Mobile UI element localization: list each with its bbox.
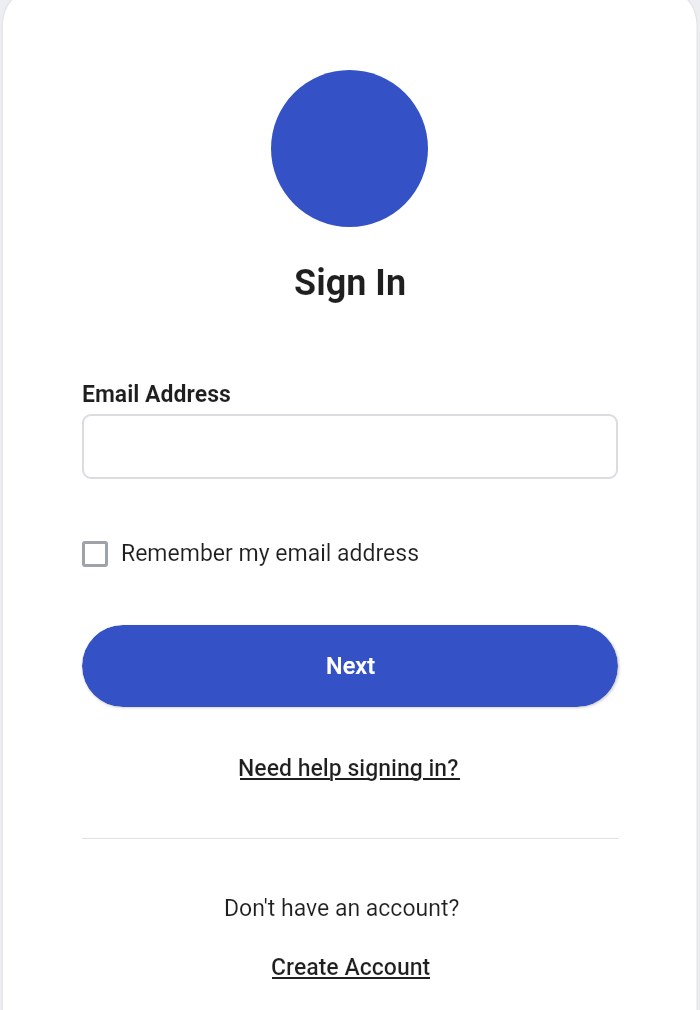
staticText: Next (326, 652, 375, 680)
staticText: Need help signing in? (238, 755, 459, 782)
button[interactable]: Create Account (271, 954, 431, 988)
staticText: Remember my email address (121, 540, 420, 567)
staticText: Email Address (82, 381, 231, 408)
button[interactable]: Email Address text field (82, 414, 618, 479)
staticText: Create Account (271, 954, 431, 981)
button[interactable]: Remember my email address (82, 535, 422, 571)
button[interactable]: Next (82, 625, 618, 707)
button[interactable]: Need help signing in? (238, 755, 461, 789)
staticText: Don't have an account? (224, 895, 460, 922)
staticText: Sign In (294, 262, 407, 304)
